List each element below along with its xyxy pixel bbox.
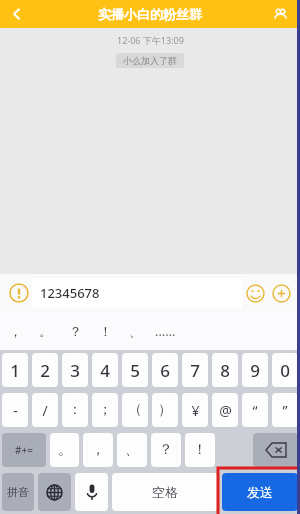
button[interactable]: Emoji — [242, 280, 268, 306]
button[interactable]: 6 — [152, 353, 178, 387]
button[interactable]: 发送 — [222, 473, 298, 511]
staticText: ； — [98, 401, 112, 419]
staticText: 发送 — [247, 484, 273, 500]
staticText: “ — [252, 401, 258, 420]
button[interactable]: 2 — [32, 353, 58, 387]
staticText: 4 — [100, 359, 110, 382]
button[interactable]: 7 — [182, 353, 208, 387]
staticText: 2 — [40, 359, 50, 382]
staticText: …… — [155, 322, 176, 340]
button[interactable]: Back — [0, 0, 34, 28]
staticText: ， — [9, 323, 22, 339]
button[interactable]: ？ — [60, 312, 90, 350]
button[interactable]: / — [32, 393, 58, 427]
staticText: 3 — [70, 359, 80, 382]
button[interactable]: ！ — [185, 433, 215, 467]
button[interactable]: 12345678 — [40, 278, 242, 308]
staticText: 6 — [160, 359, 170, 382]
staticText: ， — [91, 441, 105, 459]
button[interactable]: 1 — [2, 353, 28, 387]
staticText: 8 — [220, 359, 230, 382]
staticText: 、 — [129, 323, 142, 339]
button[interactable]: （ — [122, 393, 148, 427]
staticText: ） — [158, 401, 172, 419]
button[interactable]: 空格 — [112, 473, 218, 511]
staticText: / — [42, 401, 48, 420]
staticText: - — [13, 401, 18, 420]
staticText: 。 — [39, 323, 52, 339]
button[interactable]: ， — [83, 433, 113, 467]
button[interactable]: 0 — [272, 353, 298, 387]
button[interactable]: 、 — [117, 433, 147, 467]
staticText: 空格 — [152, 484, 178, 500]
staticText: 0 — [280, 359, 290, 382]
button[interactable]: ） — [152, 393, 178, 427]
button[interactable]: 、 — [120, 312, 150, 350]
button[interactable]: 4 — [92, 353, 118, 387]
button[interactable]: 5 — [122, 353, 148, 387]
staticText: （ — [128, 401, 142, 419]
staticText: ！ — [99, 323, 112, 339]
button[interactable]: ： — [62, 393, 88, 427]
staticText: @ — [219, 401, 232, 420]
button[interactable]: Backspace — [253, 433, 298, 467]
staticText: ！ — [193, 441, 207, 459]
staticText: 7 — [190, 359, 200, 382]
button[interactable]: …… — [150, 312, 180, 350]
button[interactable]: 8 — [212, 353, 238, 387]
staticText: 拼音 — [7, 485, 29, 499]
staticText: ？ — [69, 323, 82, 339]
button[interactable]: - — [2, 393, 28, 427]
button[interactable]: “ — [242, 393, 268, 427]
button[interactable]: ； — [92, 393, 118, 427]
button[interactable]: ” — [272, 393, 298, 427]
staticText: 12345678 — [40, 284, 100, 302]
button[interactable]: 拼音 — [2, 473, 34, 511]
button[interactable]: Voice input — [6, 280, 32, 306]
staticText: 1 — [10, 359, 20, 382]
staticText: 9 — [250, 359, 260, 382]
staticText: 实播小白的粉丝群 — [98, 6, 202, 22]
staticText: 5 — [130, 359, 140, 382]
staticText: ” — [282, 401, 288, 420]
button[interactable]: More — [268, 280, 294, 306]
button[interactable]: Switch language — [38, 473, 71, 511]
button[interactable]: ！ — [90, 312, 120, 350]
staticText: 、 — [125, 441, 139, 459]
staticText: ： — [68, 401, 82, 419]
button[interactable]: 9 — [242, 353, 268, 387]
button[interactable]: ， — [0, 312, 30, 350]
button[interactable]: ？ — [151, 433, 181, 467]
button[interactable]: #+= — [2, 433, 46, 467]
button[interactable]: Group members — [268, 2, 292, 26]
staticText: #+= — [15, 443, 33, 457]
button[interactable]: ¥ — [182, 393, 208, 427]
staticText: 小么加入了群 — [123, 55, 177, 66]
staticText: ？ — [159, 441, 173, 459]
staticText: 12-06 下午13:09 — [117, 34, 184, 46]
staticText: 。 — [58, 441, 72, 459]
button[interactable]: @ — [212, 393, 238, 427]
button[interactable]: Voice — [75, 473, 108, 511]
button[interactable]: 。 — [30, 312, 60, 350]
staticText: ¥ — [191, 401, 200, 420]
button[interactable]: 。 — [50, 433, 79, 467]
button[interactable]: 3 — [62, 353, 88, 387]
